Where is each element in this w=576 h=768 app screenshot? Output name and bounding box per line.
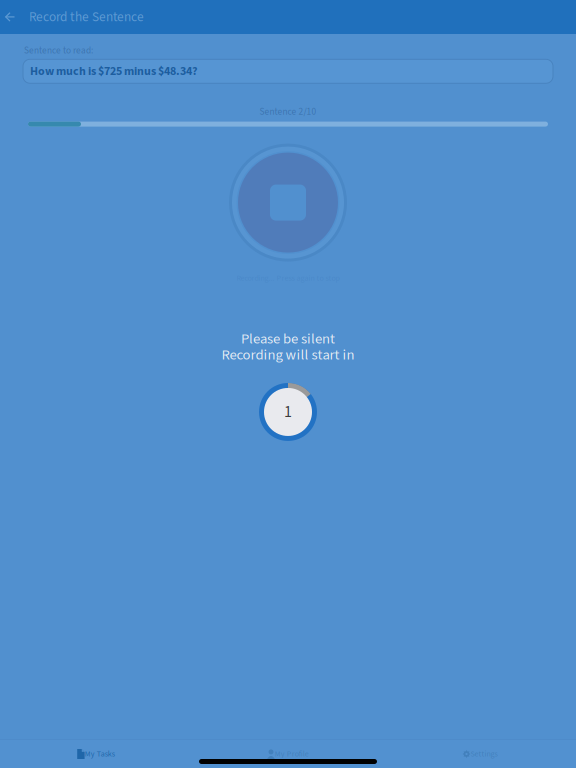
staticText: Record the Sentence <box>29 7 144 26</box>
staticText: Sentence 2/10 <box>259 105 316 119</box>
staticText: My Profile <box>275 748 309 760</box>
staticText: Sentence to read: <box>24 44 93 57</box>
staticText: 1 <box>284 401 292 423</box>
staticText: How much is $725 minus $48.34? <box>30 63 198 80</box>
staticText: Recording will start in <box>221 344 354 365</box>
button[interactable]: Stop recording <box>228 143 348 263</box>
staticText: Please be silent <box>241 328 335 349</box>
button[interactable]: Back <box>0 0 29 34</box>
button[interactable]: My Profile <box>192 741 384 767</box>
staticText: Settings <box>470 748 497 760</box>
staticText: My Tasks <box>85 748 115 760</box>
button[interactable]: My Tasks <box>0 741 192 767</box>
